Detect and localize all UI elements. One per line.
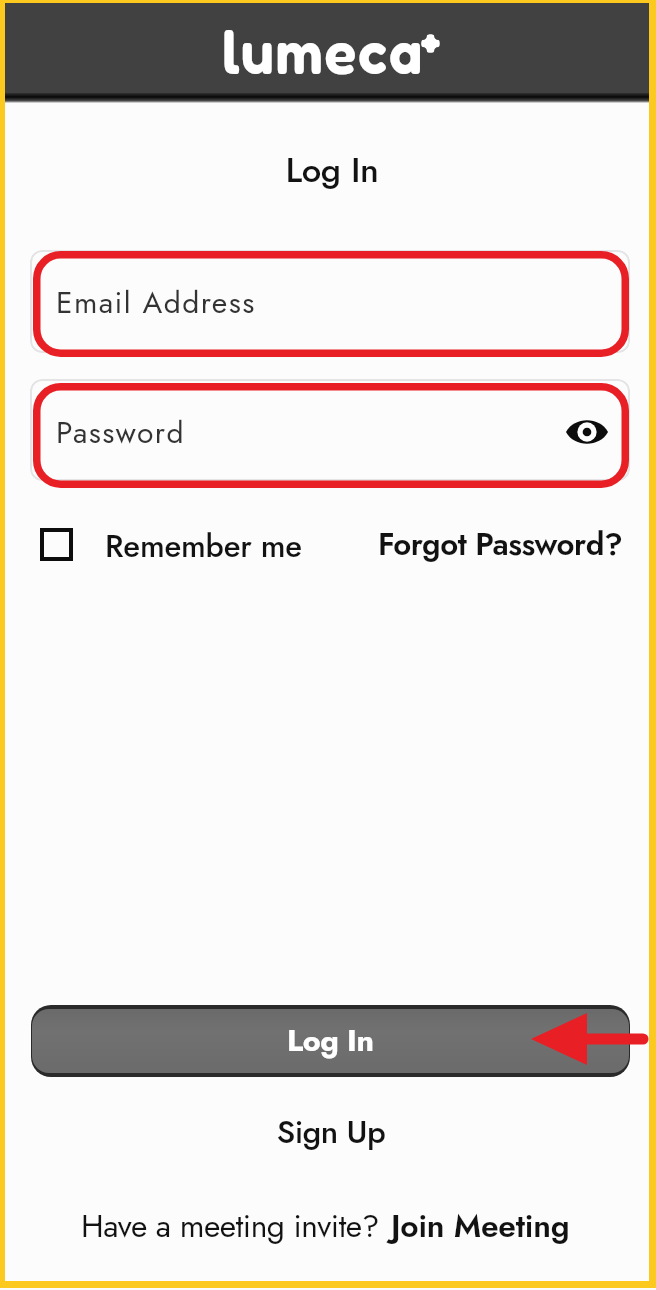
staticText: Email Address: [56, 281, 256, 324]
button[interactable]: Join Meeting: [391, 1203, 570, 1249]
button[interactable]: Forgot Password?: [378, 522, 623, 567]
staticText: lumeca: [222, 16, 424, 87]
staticText: Have a meeting invite?: [81, 1203, 379, 1249]
button[interactable]: [30, 379, 630, 481]
button[interactable]: [40, 528, 73, 561]
staticText: Log In: [287, 1018, 374, 1062]
staticText: Log In: [10, 145, 654, 195]
button[interactable]: Remember me: [105, 524, 302, 569]
button[interactable]: Show password: [556, 401, 618, 463]
button[interactable]: Log In: [32, 1009, 629, 1073]
staticText: Password: [56, 411, 185, 454]
button[interactable]: Sign Up: [9, 1109, 653, 1155]
button[interactable]: [30, 250, 630, 353]
